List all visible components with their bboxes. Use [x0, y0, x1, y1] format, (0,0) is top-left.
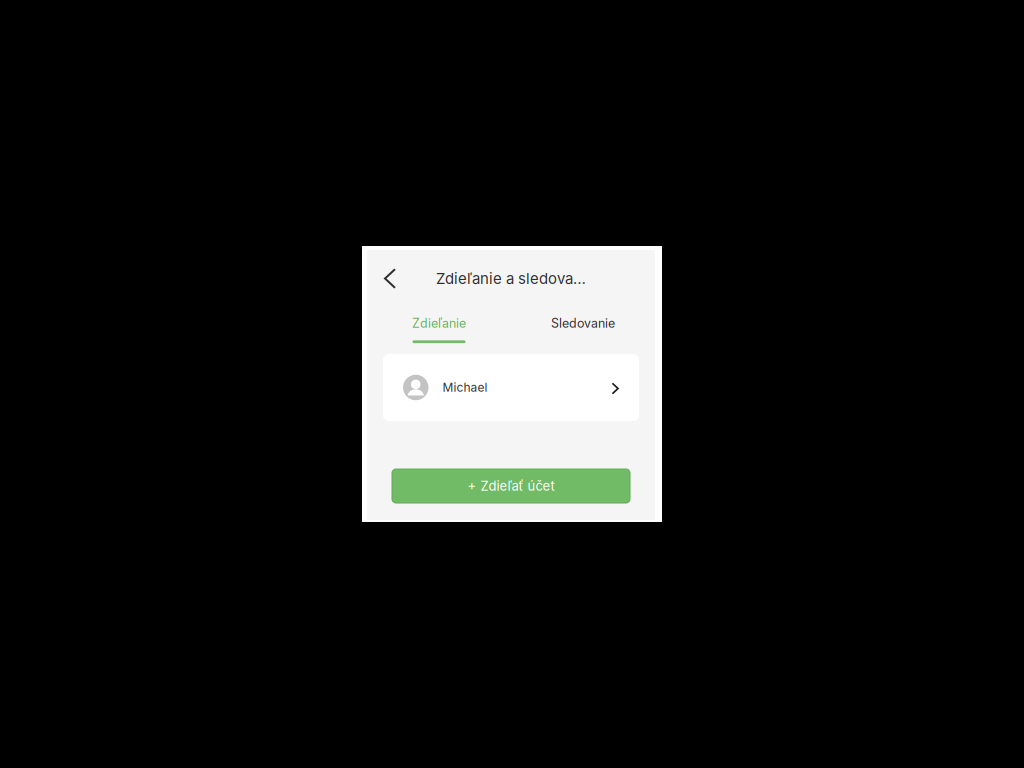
button[interactable]: Michael [383, 354, 639, 421]
staticText: + Zdieľať účet [467, 478, 554, 494]
staticText: Zdieľanie [412, 316, 466, 331]
button[interactable]: Sledovanie [511, 307, 655, 344]
button[interactable]: Zdieľanie [367, 307, 511, 344]
staticText: Sledovanie [551, 316, 615, 331]
staticText: Michael [442, 380, 487, 395]
button[interactable]: Back [376, 260, 404, 296]
staticText: Zdieľanie a sledova… [436, 269, 586, 288]
button[interactable]: + Zdieľať účet [392, 469, 630, 503]
